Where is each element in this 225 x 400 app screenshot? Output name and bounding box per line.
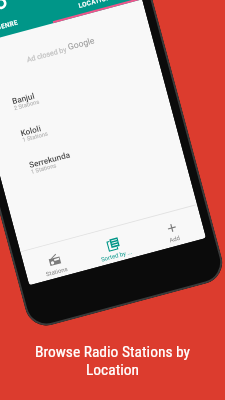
button[interactable]: Stations <box>20 236 88 285</box>
staticText: Ad closed by <box>26 44 69 63</box>
button[interactable]: Banjul <box>0 51 165 131</box>
button[interactable]: Kololi <box>0 83 173 163</box>
other: Radio <box>0 0 9 11</box>
staticText: 1 Stations <box>22 130 49 144</box>
staticText: Google <box>67 35 96 52</box>
staticText: GENRE <box>0 18 19 32</box>
staticText: Add <box>168 234 181 243</box>
staticText: Stations <box>45 265 69 277</box>
staticText: Serrekunda <box>28 149 71 170</box>
button[interactable]: LOCATION <box>50 0 140 17</box>
button[interactable]: Sorted by <box>79 220 147 269</box>
button[interactable]: GENRE <box>0 10 52 41</box>
staticText: Banjul <box>11 91 36 106</box>
staticText: Sorted by ... <box>100 248 133 263</box>
staticText: Kololi <box>19 123 42 138</box>
staticText: Browse Radio Stations by Location <box>0 343 225 379</box>
staticText: 2 Stations <box>13 99 40 112</box>
staticText: 1 Stations <box>30 162 57 176</box>
button[interactable]: Add <box>138 204 206 254</box>
staticText: LOCATION <box>78 0 113 10</box>
button[interactable]: Serrekunda <box>0 115 182 194</box>
